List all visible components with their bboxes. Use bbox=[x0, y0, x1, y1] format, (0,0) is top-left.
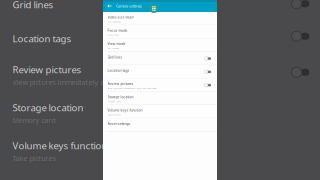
staticText: Review pictures bbox=[107, 82, 133, 86]
staticText: Memory card bbox=[107, 100, 120, 103]
staticText: Video size (rear) bbox=[107, 15, 133, 19]
staticText: Volume keys function bbox=[12, 139, 107, 152]
button[interactable]: Back bbox=[103, 0, 116, 12]
button[interactable]: Storage location bbox=[103, 92, 217, 105]
staticText: Review pictures bbox=[12, 63, 81, 76]
staticText: Auto focus bbox=[107, 33, 118, 36]
staticText: Storage location bbox=[107, 95, 133, 99]
button[interactable]: Video size (rear) bbox=[103, 12, 217, 25]
staticText: Memory card bbox=[12, 116, 55, 125]
button[interactable]: Reset settings bbox=[103, 118, 217, 132]
staticText: Camera settings bbox=[116, 3, 142, 9]
staticText: Full screen bbox=[107, 46, 118, 50]
button[interactable]: Focus mode bbox=[103, 25, 217, 39]
staticText: Storage location bbox=[12, 101, 83, 114]
staticText: Focus mode bbox=[107, 28, 127, 33]
staticText: Take pictures bbox=[107, 113, 120, 116]
staticText: View pictures immediately after you take… bbox=[12, 78, 166, 87]
staticText: HD 1280x720 bbox=[107, 20, 120, 23]
staticText: Reset settings bbox=[107, 121, 130, 126]
button[interactable]: Location tags bbox=[103, 65, 217, 78]
staticText: Grid lines bbox=[12, 0, 53, 11]
staticText: Location tags bbox=[12, 32, 71, 45]
button[interactable]: Review pictures bbox=[103, 78, 217, 92]
staticText: Grid lines bbox=[107, 55, 122, 59]
staticText: Volume keys function bbox=[107, 108, 142, 113]
button[interactable]: Switch view bbox=[149, 4, 158, 13]
staticText: View mode bbox=[107, 42, 125, 46]
staticText: Location tags bbox=[107, 68, 129, 73]
staticText: Take pictures bbox=[12, 154, 55, 163]
button[interactable]: Grid lines bbox=[103, 52, 217, 65]
button[interactable]: Volume keys function bbox=[103, 105, 217, 118]
button[interactable]: View mode bbox=[103, 39, 217, 52]
staticText: View pictures immediately after you take… bbox=[107, 86, 156, 90]
